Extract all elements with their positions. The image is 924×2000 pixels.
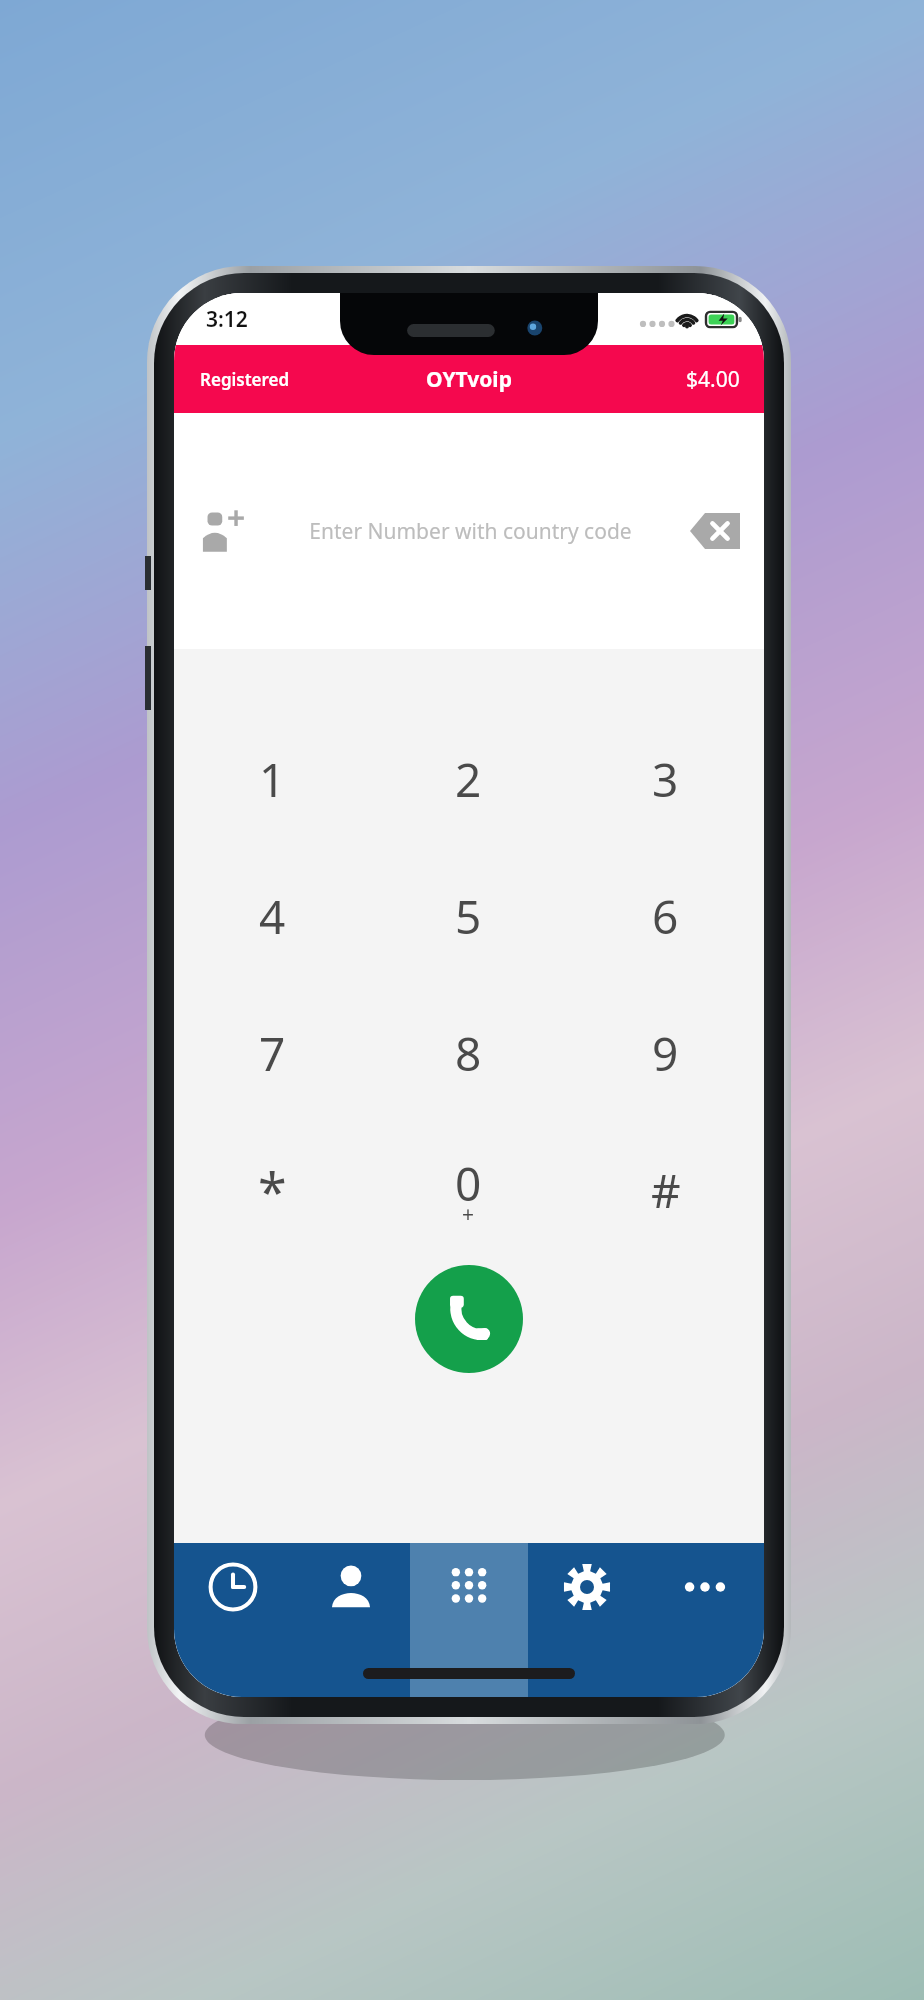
staticText: Registered <box>200 368 290 391</box>
staticText: OYTvoip <box>426 365 512 394</box>
staticText: # <box>651 1159 681 1222</box>
staticText: Enter Number with country code <box>309 517 632 546</box>
button[interactable]: * <box>174 1122 370 1259</box>
button[interactable]: Dialpad <box>410 1543 528 1697</box>
button[interactable]: Add contact <box>192 498 258 564</box>
button[interactable]: Settings <box>528 1543 646 1697</box>
button[interactable]: 0 <box>370 1122 567 1259</box>
button[interactable]: Call <box>415 1265 523 1373</box>
button[interactable]: 4 <box>174 848 370 985</box>
button[interactable]: 6 <box>567 848 764 985</box>
button[interactable]: 8 <box>370 985 567 1122</box>
staticText: 3:12 <box>206 305 248 334</box>
button[interactable]: 2 <box>370 711 567 848</box>
button[interactable]: Backspace <box>682 498 748 564</box>
button[interactable]: 1 <box>174 711 370 848</box>
button[interactable]: 7 <box>174 985 370 1122</box>
staticText: 9 <box>652 1022 679 1085</box>
staticText: 8 <box>455 1022 482 1085</box>
staticText: 3 <box>652 748 679 811</box>
button[interactable]: 5 <box>370 848 567 985</box>
staticText: 7 <box>259 1022 286 1085</box>
staticText: 1 <box>259 748 286 811</box>
button[interactable]: More <box>646 1543 764 1697</box>
button[interactable]: # <box>567 1122 764 1259</box>
staticText: $4.00 <box>686 365 740 394</box>
staticText: + <box>462 1200 475 1229</box>
staticText: 0 <box>455 1152 482 1215</box>
staticText: 2 <box>455 748 482 811</box>
button[interactable]: Contacts <box>292 1543 410 1697</box>
staticText: 5 <box>455 885 482 948</box>
staticText: * <box>258 1155 287 1226</box>
staticText: 6 <box>652 885 679 948</box>
button[interactable]: 9 <box>567 985 764 1122</box>
button[interactable]: 3 <box>567 711 764 848</box>
button[interactable]: Recents <box>174 1543 292 1697</box>
staticText: 4 <box>259 885 286 948</box>
